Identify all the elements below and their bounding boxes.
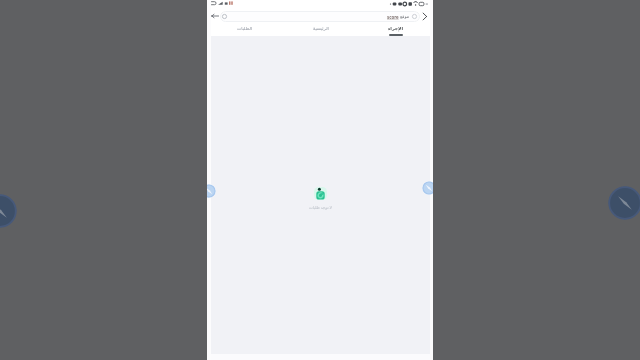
button[interactable]: Navigate: [608, 186, 640, 220]
staticText: لا توجد طلبات: [309, 205, 332, 210]
button[interactable]: Navigate: [207, 184, 216, 198]
button[interactable]: الإجراء: [358, 23, 433, 36]
staticText: الإجراء: [388, 26, 404, 31]
button[interactable]: Navigate: [0, 194, 17, 228]
staticText: score: [387, 14, 399, 20]
button[interactable]: الطلبات: [207, 23, 283, 36]
staticText: الرئيسية: [313, 26, 329, 31]
button[interactable]: الرئيسية: [283, 23, 358, 36]
button[interactable]: Navigate: [422, 181, 433, 195]
staticText: موقع: [400, 14, 410, 19]
button[interactable]: Back: [210, 11, 220, 21]
button[interactable]: score: [220, 11, 420, 22]
button[interactable]: Forward: [420, 11, 431, 22]
staticText: الطلبات: [237, 26, 253, 31]
